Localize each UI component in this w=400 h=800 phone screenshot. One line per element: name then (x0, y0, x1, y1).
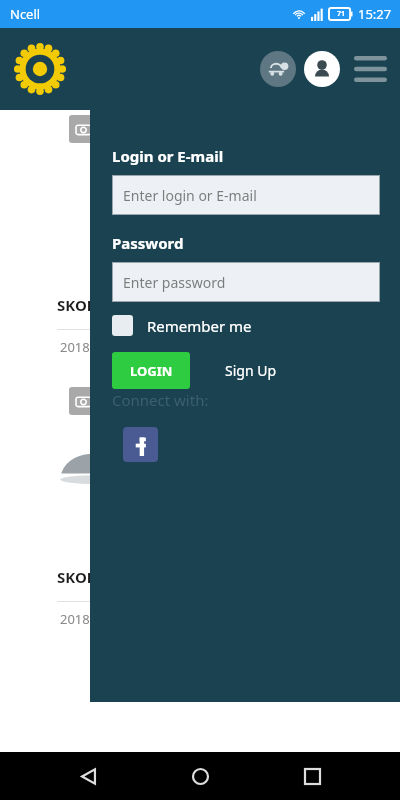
staticText: SKODA (57, 295, 108, 315)
staticText: 2018 (60, 610, 90, 628)
button[interactable]: Enter password (112, 262, 380, 302)
staticText: SKODA (57, 567, 108, 587)
staticText: Enter login or E-mail (123, 186, 257, 205)
button[interactable]: Facebook (123, 427, 158, 462)
button[interactable]: Add car (260, 51, 296, 87)
button[interactable]: Profile (304, 51, 340, 87)
staticText: 15:27 (358, 5, 392, 23)
button[interactable]: Back (64, 752, 112, 800)
button[interactable]: Enter login or E-mail (112, 175, 380, 215)
staticText: Password (112, 233, 184, 253)
staticText: Sign Up (225, 361, 277, 380)
staticText: 2018 (60, 338, 90, 356)
button[interactable]: Remember me (112, 315, 252, 336)
button[interactable]: Menu (350, 49, 390, 89)
button[interactable]: LOGIN (112, 352, 190, 389)
staticText: Connect with: (112, 390, 209, 410)
staticText: Remember me (147, 316, 252, 336)
button[interactable]: Sign Up (221, 357, 281, 384)
staticText: LOGIN (130, 362, 173, 380)
staticText: Ncell (10, 5, 41, 23)
button[interactable]: Home (176, 752, 224, 800)
staticText: Login or E-mail (112, 146, 224, 166)
button[interactable]: Recent apps (288, 752, 336, 800)
staticText: Enter password (123, 273, 226, 292)
button[interactable]: Logo (14, 43, 66, 95)
staticText: 71 (337, 9, 346, 19)
